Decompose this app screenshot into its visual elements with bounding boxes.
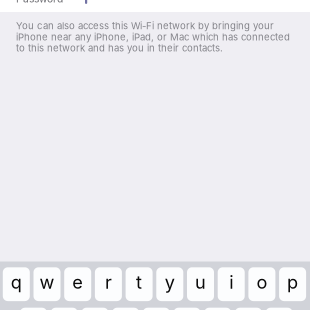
- button[interactable]: g: [143, 308, 170, 310]
- staticText: w: [39, 271, 54, 293]
- button[interactable]: f: [112, 308, 139, 310]
- button[interactable]: l: [266, 308, 293, 310]
- button[interactable]: i: [218, 267, 245, 301]
- button[interactable]: w: [33, 267, 60, 301]
- button[interactable]: e: [64, 267, 91, 301]
- button[interactable]: k: [235, 308, 262, 310]
- staticText: Password: [16, 0, 63, 5]
- staticText: o: [256, 271, 267, 293]
- staticText: i: [229, 271, 233, 293]
- staticText: u: [195, 271, 206, 293]
- staticText: y: [165, 271, 175, 293]
- button[interactable]: j: [204, 308, 231, 310]
- button[interactable]: y: [156, 267, 183, 301]
- staticText: You can also access this Wi-Fi network b…: [16, 20, 290, 54]
- button[interactable]: r: [95, 267, 122, 301]
- staticText: p: [287, 271, 298, 293]
- staticText: r: [105, 271, 112, 293]
- button[interactable]: p: [279, 267, 306, 301]
- button[interactable]: s: [51, 308, 78, 310]
- button[interactable]: d: [81, 308, 108, 310]
- staticText: e: [72, 271, 83, 293]
- staticText: t: [136, 271, 142, 293]
- button[interactable]: u: [187, 267, 214, 301]
- button[interactable]: Password: [0, 0, 310, 12]
- button[interactable]: q: [3, 267, 30, 301]
- button[interactable]: t: [126, 267, 153, 301]
- button[interactable]: h: [173, 308, 200, 310]
- button[interactable]: o: [248, 267, 275, 301]
- staticText: q: [11, 271, 22, 293]
- button[interactable]: a: [20, 308, 47, 310]
